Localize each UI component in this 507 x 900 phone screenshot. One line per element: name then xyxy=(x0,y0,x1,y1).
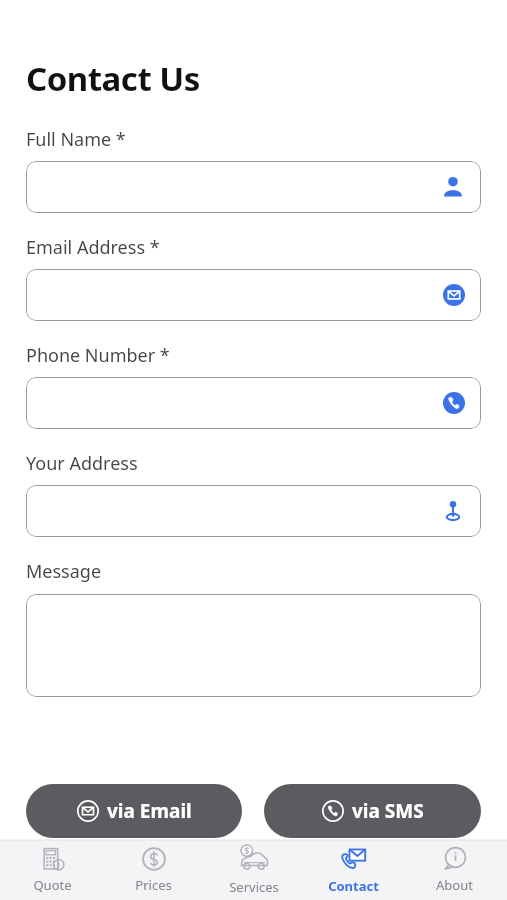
button[interactable]: via Email xyxy=(26,784,242,838)
staticText: Services xyxy=(229,878,279,896)
button[interactable] xyxy=(26,377,481,429)
button[interactable] xyxy=(26,161,481,213)
button[interactable] xyxy=(26,485,481,537)
staticText: Message xyxy=(26,559,102,584)
staticText: Prices xyxy=(135,876,172,894)
button[interactable]: Quote xyxy=(5,840,100,900)
button[interactable] xyxy=(26,594,481,697)
staticText: Contact xyxy=(328,877,379,895)
staticText: Quote xyxy=(33,876,72,894)
staticText: Full Name * xyxy=(26,127,126,152)
staticText: Email Address * xyxy=(26,235,160,260)
button[interactable] xyxy=(26,269,481,321)
staticText: via SMS xyxy=(352,798,424,824)
staticText: About xyxy=(436,876,473,894)
staticText: Your Address xyxy=(26,451,138,476)
button[interactable]: Contact xyxy=(306,840,401,900)
button[interactable]: Services xyxy=(206,840,301,900)
staticText: via Email xyxy=(107,798,192,824)
staticText: Phone Number * xyxy=(26,343,170,368)
button[interactable]: Prices xyxy=(106,840,201,900)
staticText: Contact Us xyxy=(26,56,200,101)
button[interactable]: via SMS xyxy=(264,784,481,838)
button[interactable]: About xyxy=(407,840,502,900)
